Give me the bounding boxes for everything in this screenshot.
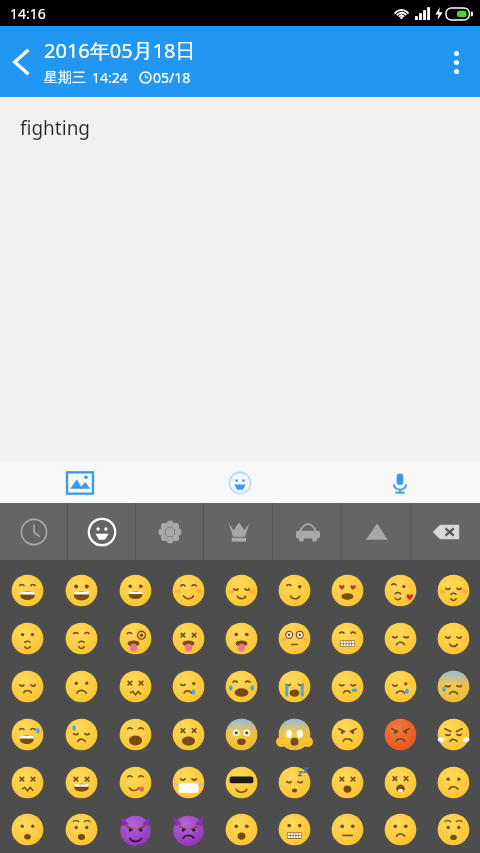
- staticText: 14:16: [10, 4, 46, 23]
- button[interactable]: Voice input: [320, 462, 480, 503]
- button[interactable]: Places: [273, 503, 342, 560]
- button[interactable]: Emoji: [321, 566, 374, 614]
- button[interactable]: Emoji: [374, 614, 427, 662]
- button[interactable]: Emoji: [162, 614, 215, 662]
- button[interactable]: Smileys: [68, 503, 136, 560]
- button[interactable]: Emoji: [268, 566, 321, 614]
- button[interactable]: Emoji: [268, 662, 321, 710]
- button[interactable]: Emoji: [54, 806, 108, 853]
- button[interactable]: More options: [432, 31, 480, 93]
- button[interactable]: Emoji: [374, 710, 427, 758]
- button[interactable]: Emoji: [215, 758, 268, 806]
- button[interactable]: Emoji: [427, 710, 480, 758]
- button[interactable]: Emoji: [108, 758, 162, 806]
- button[interactable]: Emoji: [0, 710, 54, 758]
- button[interactable]: Emoji: [427, 758, 480, 806]
- button[interactable]: Emoji: [374, 566, 427, 614]
- button[interactable]: Emoji: [108, 806, 162, 853]
- button[interactable]: Emoji: [321, 614, 374, 662]
- button[interactable]: Emoji: [108, 566, 162, 614]
- button[interactable]: Emoji: [215, 614, 268, 662]
- staticText: 05/18: [153, 68, 191, 87]
- button[interactable]: Emoji: [162, 566, 215, 614]
- button[interactable]: Emoji: [427, 662, 480, 710]
- button[interactable]: Emoji: [215, 662, 268, 710]
- button[interactable]: Emoji: [215, 566, 268, 614]
- staticText: 2016年05月18日: [44, 37, 196, 64]
- button[interactable]: Emoji: [374, 806, 427, 853]
- button[interactable]: Emoji: [162, 758, 215, 806]
- button[interactable]: Emoji: [215, 806, 268, 853]
- button[interactable]: Emoji: [427, 806, 480, 853]
- button[interactable]: Emoji: [321, 758, 374, 806]
- button[interactable]: Emoji: [54, 662, 108, 710]
- button[interactable]: Emoji: [54, 710, 108, 758]
- button[interactable]: Insert image: [0, 462, 160, 503]
- button[interactable]: Nature: [136, 503, 204, 560]
- button[interactable]: Emoji: [0, 566, 54, 614]
- button[interactable]: Emoji: [54, 758, 108, 806]
- button[interactable]: Emoji: [268, 758, 321, 806]
- button[interactable]: Emoji: [268, 614, 321, 662]
- button[interactable]: Emoji: [427, 566, 480, 614]
- button[interactable]: Emoji: [162, 710, 215, 758]
- button[interactable]: Emoji: [0, 806, 54, 853]
- button[interactable]: Emoji: [0, 758, 54, 806]
- button[interactable]: Emoji: [108, 614, 162, 662]
- button[interactable]: Emoji: [427, 614, 480, 662]
- button[interactable]: Emoji: [321, 710, 374, 758]
- button[interactable]: Emoji: [0, 662, 54, 710]
- button[interactable]: Emoji: [108, 662, 162, 710]
- button[interactable]: Emoji: [374, 758, 427, 806]
- button[interactable]: Emoji: [108, 710, 162, 758]
- button[interactable]: Back: [0, 32, 44, 92]
- staticText: 星期三: [44, 69, 86, 87]
- button[interactable]: Emoji: [268, 806, 321, 853]
- button[interactable]: Emoji: [162, 662, 215, 710]
- button[interactable]: Objects: [204, 503, 273, 560]
- button[interactable]: Emoji: [215, 710, 268, 758]
- button[interactable]: Symbols: [342, 503, 411, 560]
- button[interactable]: Emoji: [374, 662, 427, 710]
- button[interactable]: Emoji: [54, 566, 108, 614]
- button[interactable]: Insert emoji: [160, 462, 320, 503]
- button[interactable]: Emoji: [54, 614, 108, 662]
- button[interactable]: Emoji: [321, 806, 374, 853]
- button[interactable]: Emoji: [162, 806, 215, 853]
- button[interactable]: Backspace: [411, 503, 480, 560]
- button[interactable]: Emoji: [0, 614, 54, 662]
- button[interactable]: fighting: [0, 97, 480, 462]
- button[interactable]: Recent: [0, 503, 68, 560]
- staticText: fighting: [20, 115, 91, 141]
- button[interactable]: Emoji: [321, 662, 374, 710]
- button[interactable]: Emoji: [268, 710, 321, 758]
- staticText: 14:24: [92, 68, 128, 87]
